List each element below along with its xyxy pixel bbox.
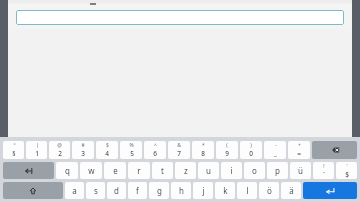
staticText: ä	[289, 185, 294, 196]
staticText: (	[226, 142, 228, 149]
staticText: ü	[298, 165, 303, 176]
staticText: j	[202, 185, 205, 196]
staticText: 2	[58, 149, 62, 158]
button[interactable]: %	[120, 141, 142, 159]
staticText: ^	[154, 142, 157, 149]
button[interactable]: w	[80, 162, 102, 179]
button[interactable]: °	[3, 141, 24, 159]
staticText: -	[275, 142, 277, 149]
button[interactable]: ö	[259, 182, 279, 199]
button[interactable]: Shift	[3, 182, 63, 199]
button[interactable]: Tab	[3, 162, 54, 179]
button[interactable]: &	[168, 141, 190, 159]
staticText: %	[129, 142, 134, 149]
button[interactable]: e	[104, 162, 126, 179]
button[interactable]: #	[72, 141, 94, 159]
button[interactable]	[16, 10, 344, 25]
button[interactable]: z	[175, 162, 196, 179]
staticText: 4	[105, 149, 109, 158]
button[interactable]: l	[237, 182, 257, 199]
button[interactable]: ^	[144, 141, 166, 159]
button[interactable]: i	[221, 162, 242, 179]
staticText: |	[36, 142, 39, 149]
button[interactable]: p	[267, 162, 288, 179]
button[interactable]: q	[56, 162, 78, 179]
button[interactable]: h	[171, 182, 191, 199]
button[interactable]: Backspace	[312, 141, 357, 159]
staticText: 5	[130, 149, 134, 158]
button[interactable]: d	[107, 182, 126, 199]
button[interactable]: (	[216, 141, 238, 159]
staticText: h	[179, 185, 184, 196]
staticText: 3	[81, 149, 85, 158]
button[interactable]: +	[288, 141, 310, 159]
staticText: 8	[201, 149, 205, 158]
button[interactable]: ä	[281, 182, 301, 199]
button[interactable]: ü	[290, 162, 311, 179]
staticText: a	[72, 185, 77, 196]
staticText: 7	[177, 149, 181, 158]
button[interactable]: $	[96, 141, 118, 159]
button[interactable]: !	[313, 162, 334, 179]
staticText: 0	[249, 149, 253, 158]
staticText: #	[81, 142, 85, 149]
staticText: §	[12, 149, 16, 158]
staticText: r	[137, 165, 141, 176]
button[interactable]: u	[198, 162, 219, 179]
button[interactable]: @	[49, 141, 70, 159]
staticText: $	[106, 142, 109, 149]
button[interactable]: o	[244, 162, 265, 179]
button[interactable]: f	[128, 182, 147, 199]
staticText: l	[246, 185, 249, 196]
staticText: 6	[153, 149, 157, 158]
staticText: u	[206, 165, 211, 176]
button[interactable]: a	[65, 182, 84, 199]
button[interactable]: r	[128, 162, 150, 179]
staticText: '	[346, 163, 348, 170]
button[interactable]: s	[86, 182, 105, 199]
staticText: g	[157, 185, 162, 196]
staticText: d	[114, 185, 119, 196]
staticText: 9	[225, 149, 229, 158]
staticText: °	[13, 142, 16, 149]
button[interactable]: )	[240, 141, 262, 159]
button[interactable]: |	[26, 141, 47, 159]
staticText: +	[298, 142, 301, 149]
staticText: k	[223, 185, 228, 196]
staticText: $	[345, 170, 349, 179]
staticText: ö	[267, 185, 272, 196]
staticText: o	[252, 165, 257, 176]
staticText: *	[202, 142, 205, 149]
staticText: e	[113, 165, 118, 176]
button[interactable]: k	[215, 182, 235, 199]
staticText: =	[297, 149, 301, 158]
staticText: !	[323, 163, 325, 170]
staticText: z	[184, 165, 188, 176]
staticText: )	[250, 142, 252, 149]
button[interactable]: '	[336, 162, 357, 179]
staticText: p	[275, 165, 280, 176]
staticText: i	[230, 165, 233, 176]
button[interactable]: g	[149, 182, 169, 199]
staticText: t	[161, 165, 164, 176]
staticText: _	[274, 149, 277, 158]
button[interactable]: j	[193, 182, 213, 199]
button[interactable]: -	[264, 141, 286, 159]
button[interactable]: Enter	[303, 182, 357, 199]
staticText: ¨	[322, 170, 326, 179]
staticText: s	[94, 185, 98, 196]
staticText: f	[136, 185, 139, 196]
button[interactable]: t	[152, 162, 173, 179]
button[interactable]: *	[192, 141, 214, 159]
staticText: w	[88, 165, 95, 176]
staticText: 1	[35, 149, 39, 158]
staticText: q	[65, 165, 70, 176]
staticText: @	[57, 142, 62, 149]
staticText: &	[177, 142, 181, 149]
